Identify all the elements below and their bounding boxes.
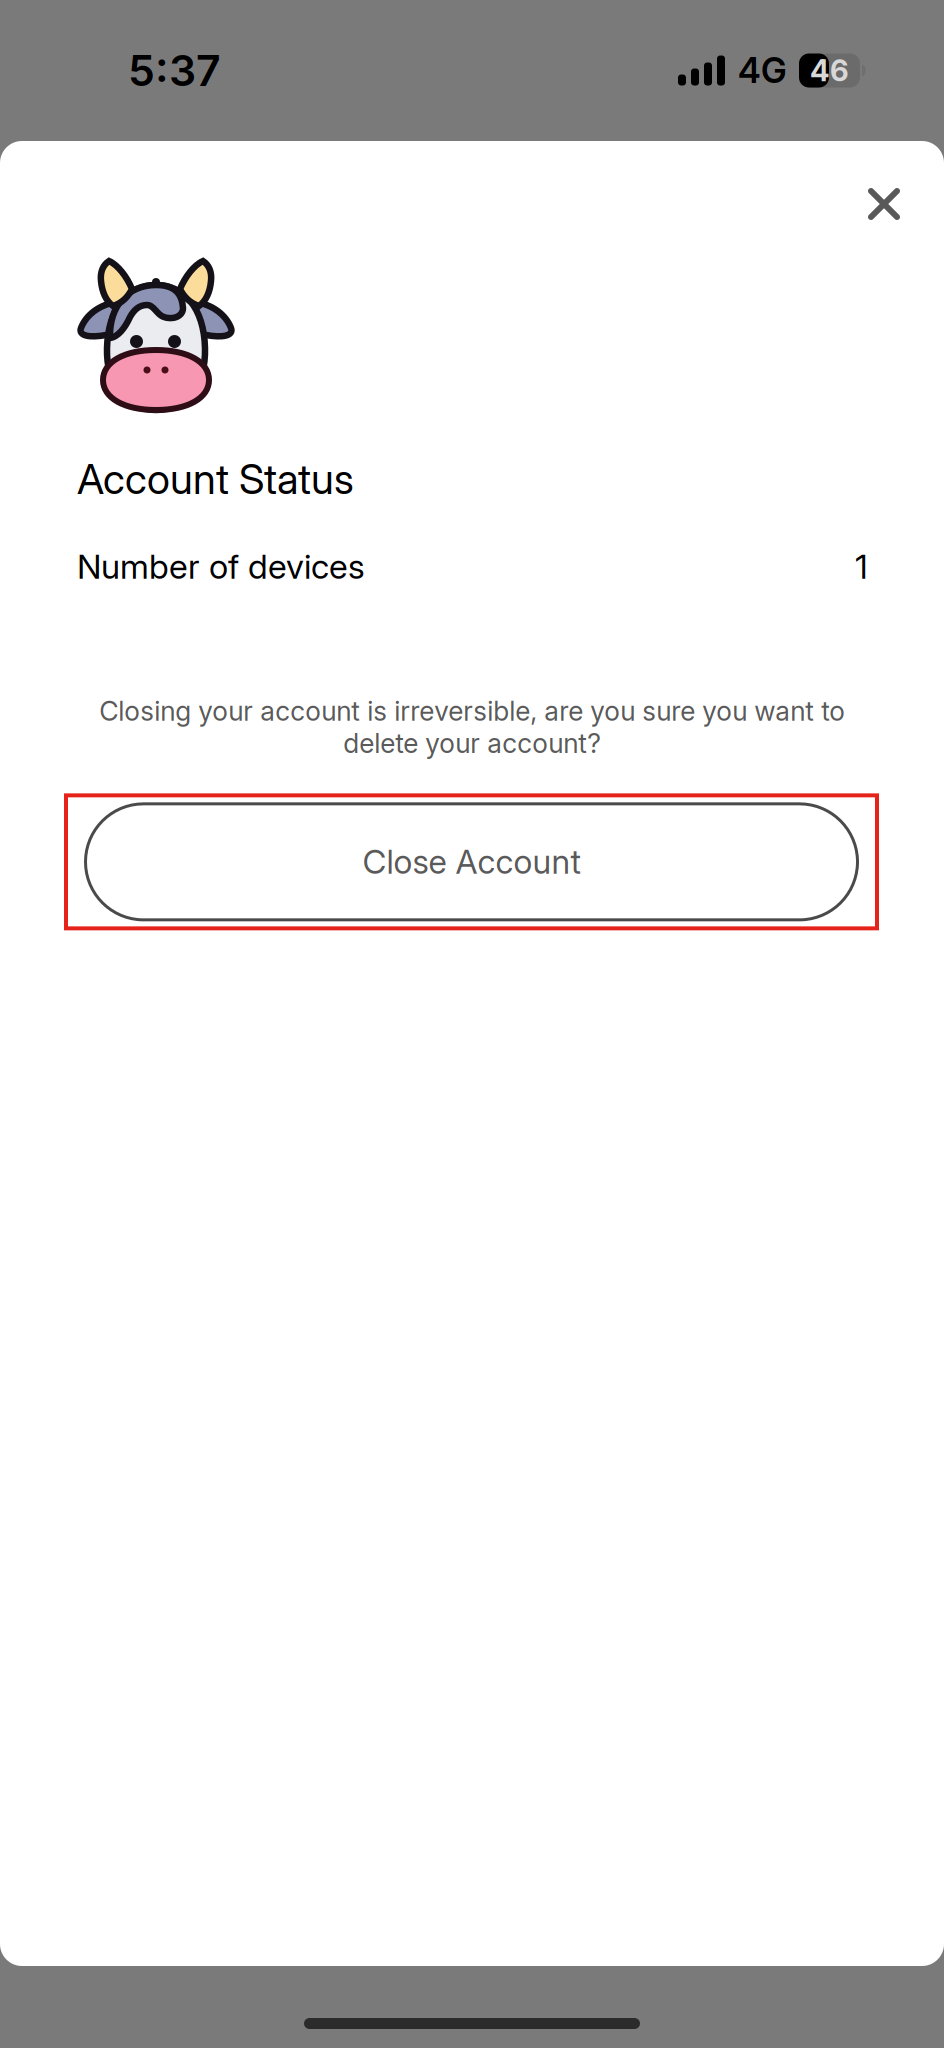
button[interactable]: Close Account [64,793,879,930]
staticText: 46 [810,53,849,88]
staticText: Closing your account is irreversible, ar… [99,695,845,759]
staticText: Number of devices [77,546,365,587]
staticText: Account Status [77,454,354,504]
button[interactable]: Close [846,166,922,242]
staticText: 4G [738,49,787,91]
staticText: 5:37 [128,45,221,96]
staticText: 1 [855,546,868,587]
staticText: Close Account [362,842,580,882]
